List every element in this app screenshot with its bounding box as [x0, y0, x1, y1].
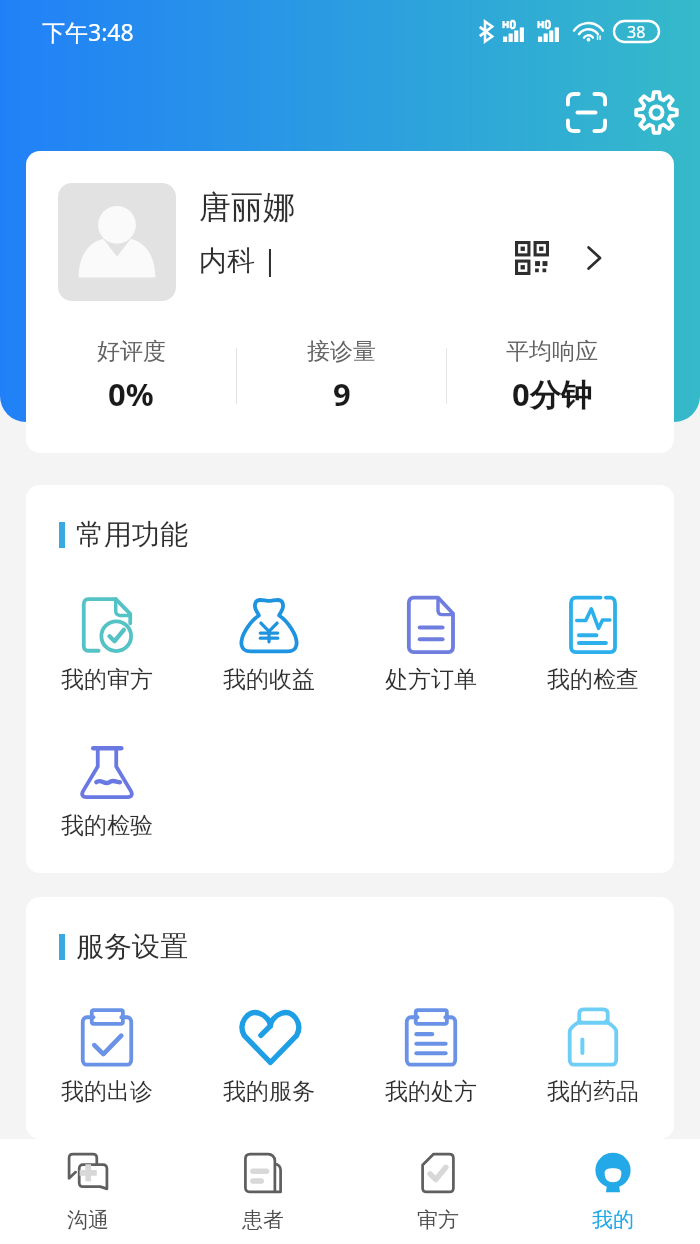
- button[interactable]: 我的: [525, 1139, 700, 1244]
- staticText: 我的检验: [61, 811, 153, 840]
- button[interactable]: Settings: [625, 81, 687, 143]
- staticText: 0%: [108, 373, 154, 415]
- staticText: 患者: [242, 1207, 284, 1233]
- staticText: 我的审方: [61, 665, 153, 694]
- staticText: 我的: [592, 1207, 634, 1233]
- staticText: 38: [627, 21, 646, 42]
- button[interactable]: 我的收益: [188, 597, 350, 694]
- staticText: 唐丽娜: [199, 187, 295, 227]
- button[interactable]: QR code: [505, 231, 559, 285]
- button[interactable]: Scan: [555, 81, 617, 143]
- staticText: 我的收益: [223, 665, 315, 694]
- staticText: 服务设置: [76, 929, 188, 964]
- staticText: 下午3:48: [42, 16, 134, 47]
- staticText: 0分钟: [512, 373, 592, 415]
- button[interactable]: 处方订单: [350, 597, 512, 694]
- button[interactable]: 我的处方: [350, 1009, 512, 1106]
- staticText: 我的出诊: [61, 1077, 153, 1106]
- button[interactable]: 患者: [175, 1139, 350, 1244]
- staticText: 沟通: [67, 1207, 109, 1233]
- button[interactable]: Profile detail: [572, 236, 616, 280]
- staticText: 我的处方: [385, 1077, 477, 1106]
- button[interactable]: 我的出诊: [26, 1009, 188, 1106]
- button[interactable]: 沟通: [0, 1139, 175, 1244]
- staticText: 我的检查: [547, 665, 639, 694]
- button[interactable]: 我的服务: [188, 1009, 350, 1106]
- button[interactable]: 我的药品: [512, 1009, 674, 1106]
- staticText: 审方: [417, 1207, 459, 1233]
- staticText: 9: [333, 373, 351, 415]
- button[interactable]: 我的检查: [512, 597, 674, 694]
- staticText: 我的药品: [547, 1077, 639, 1106]
- staticText: 好评度: [97, 337, 166, 366]
- staticText: 我的服务: [223, 1077, 315, 1106]
- button[interactable]: 审方: [350, 1139, 525, 1244]
- staticText: 接诊量: [307, 337, 376, 366]
- staticText: 处方订单: [385, 665, 477, 694]
- button[interactable]: 我的审方: [26, 597, 188, 694]
- staticText: 常用功能: [76, 517, 188, 552]
- staticText: 内科 |: [199, 240, 278, 278]
- staticText: 平均响应: [506, 337, 598, 366]
- button[interactable]: 我的检验: [26, 743, 188, 840]
